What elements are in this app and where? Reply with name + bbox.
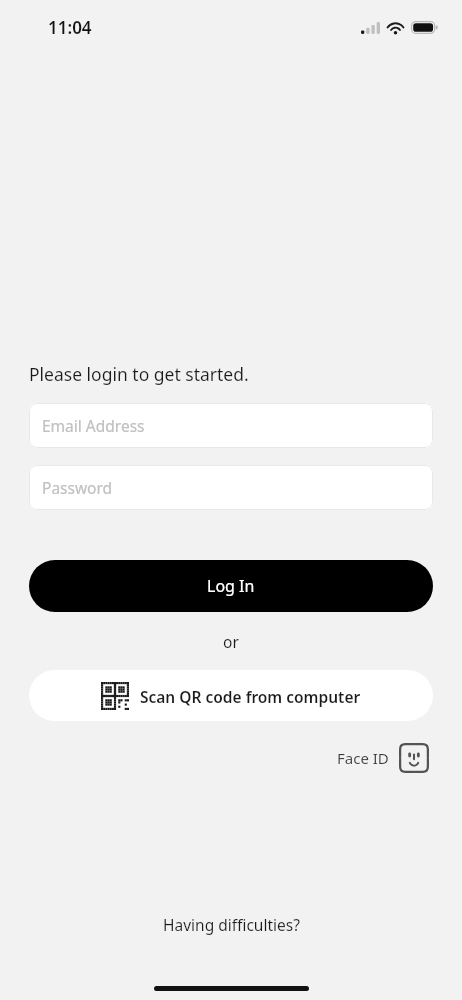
staticText: Email Address <box>42 415 145 436</box>
staticText: Password <box>42 477 113 498</box>
other: Face ID <box>399 743 429 773</box>
button[interactable]: Password <box>29 465 433 510</box>
staticText: Scan QR code from computer <box>140 686 361 707</box>
button[interactable]: Log In <box>29 560 433 612</box>
button[interactable]: QR code <box>29 670 433 721</box>
button[interactable]: Having difficulties? <box>157 912 306 937</box>
staticText: Having difficulties? <box>163 914 300 935</box>
staticText: Face ID <box>337 748 389 768</box>
staticText: Please login to get started. <box>29 362 249 386</box>
staticText: or <box>0 631 462 652</box>
other: QR code <box>101 682 129 710</box>
staticText: Log In <box>207 575 255 597</box>
button[interactable]: Email Address <box>29 403 433 448</box>
button[interactable]: Face ID <box>333 739 433 777</box>
staticText: 11:04 <box>48 16 92 39</box>
